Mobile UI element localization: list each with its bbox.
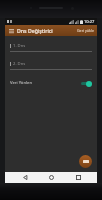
staticText: 10:27: [84, 19, 95, 24]
button[interactable]: 2. Dns: [10, 61, 92, 70]
button[interactable]: Son uygulamalar: [71, 172, 85, 183]
staticText: Geri yükle: [77, 28, 94, 33]
button[interactable]: Veri Yönlen: [10, 78, 92, 88]
button[interactable]: 1. Dns: [10, 43, 92, 52]
button[interactable]: Kaydet: [79, 155, 92, 168]
button[interactable]: Ana ekran: [44, 172, 58, 183]
staticText: 1. Dns: [13, 43, 26, 49]
button[interactable]: Geri: [18, 172, 32, 183]
button[interactable]: Menü: [5, 25, 17, 36]
staticText: Dns Değiştirici: [17, 27, 74, 34]
staticText: 2. Dns: [13, 61, 26, 67]
staticText: Veri Yönlen: [10, 80, 80, 86]
button[interactable]: Geri yükle: [74, 26, 97, 35]
